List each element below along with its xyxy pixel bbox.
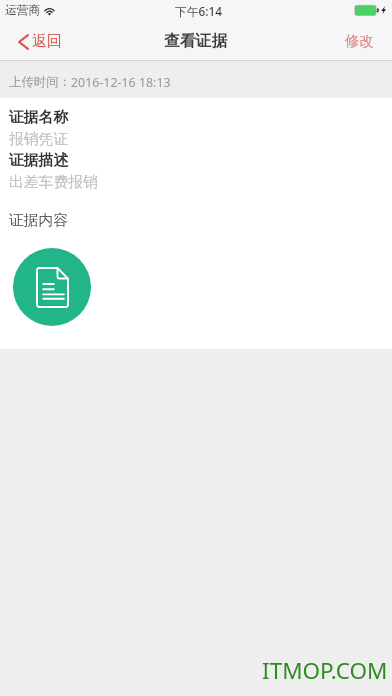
staticText: 证据名称 [9,108,69,127]
staticText: 查看证据 [164,31,228,51]
staticText: 证据描述 [9,151,69,170]
staticText: 下午6:14 [175,3,223,19]
button[interactable]: 返回 [0,27,72,56]
staticText: ITMOP.COM [262,655,388,686]
staticText: 修改 [345,32,374,50]
staticText: 证据内容 [9,211,69,230]
staticText: 运营商 [5,3,41,18]
button[interactable]: 修改 [335,27,392,55]
staticText: 报销凭证 [9,130,69,149]
staticText: 2016-12-16 18:13 [71,74,171,91]
staticText: 返回 [32,32,62,51]
staticText: 出差车费报销 [9,173,98,192]
button[interactable]: 打开证据内容 [13,248,91,326]
staticText: 上传时间： [9,74,71,90]
